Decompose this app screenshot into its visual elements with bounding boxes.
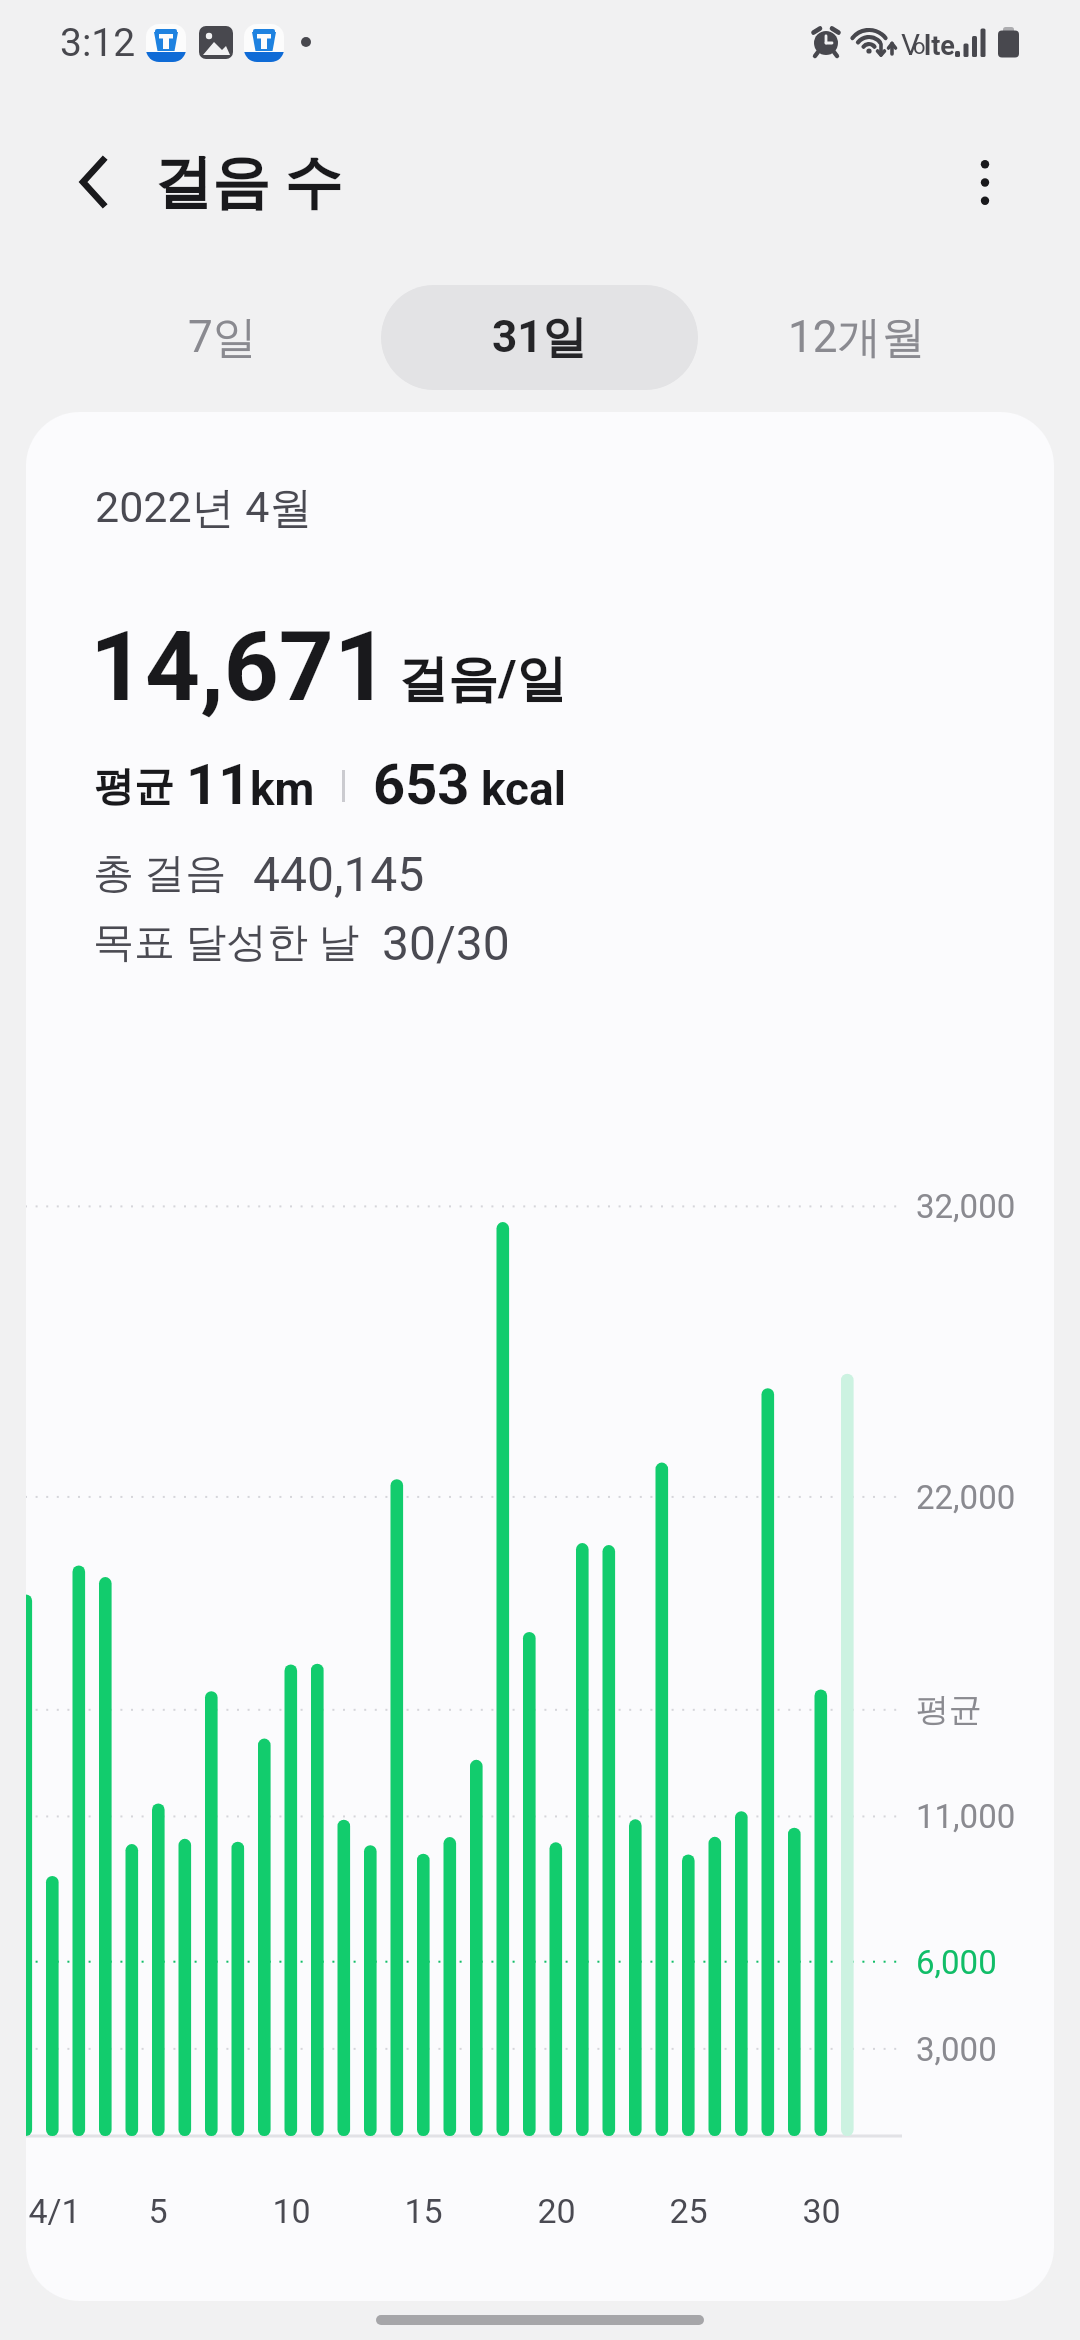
staticText: V — [901, 27, 921, 62]
staticText: 15 — [404, 2191, 443, 2231]
staticText: 4/1 — [28, 2191, 81, 2231]
staticText: 총 걸음 — [93, 848, 227, 900]
staticText: 걸음 수 — [154, 146, 343, 219]
staticText: 7일 — [188, 310, 257, 365]
button[interactable]: More options — [940, 137, 1030, 227]
staticText: 10 — [272, 2191, 311, 2231]
staticText: 목표 달성한 날 — [93, 917, 360, 969]
staticText: 12개월 — [788, 310, 926, 365]
staticText: 3,000 — [916, 2030, 997, 2069]
staticText: 5 — [148, 2191, 168, 2231]
staticText: 440,145 — [253, 846, 425, 902]
staticText: 2022년 4월 — [95, 481, 313, 535]
staticText: kcal — [481, 762, 566, 816]
staticText: 걸음/일 — [398, 648, 567, 711]
staticText: 11,000 — [916, 1797, 1016, 1836]
button[interactable]: Daily step chart for April 2022 — [26, 412, 1054, 2301]
staticText: 11 — [186, 752, 251, 818]
staticText: km — [250, 762, 315, 816]
staticText: 14,671 — [90, 611, 390, 724]
staticText: 30/30 — [382, 915, 510, 971]
staticText: 32,000 — [916, 1187, 1016, 1226]
button[interactable]: 12개월 — [698, 285, 1015, 390]
staticText: lte — [924, 30, 955, 62]
button[interactable]: 7일 — [64, 285, 381, 390]
staticText: o — [913, 34, 926, 60]
button[interactable]: Back — [48, 137, 138, 227]
staticText: 30 — [802, 2191, 841, 2231]
staticText: 6,000 — [916, 1943, 997, 1982]
staticText: 25 — [669, 2191, 708, 2231]
staticText: 3:12 — [60, 20, 136, 66]
staticText: 653 — [373, 752, 470, 818]
button[interactable]: 31일 — [381, 285, 698, 390]
staticText: 22,000 — [916, 1478, 1016, 1517]
staticText: 31일 — [492, 310, 587, 365]
staticText: 평균 — [94, 761, 174, 811]
staticText: 평균 — [916, 1689, 982, 1731]
staticText: 20 — [537, 2191, 576, 2231]
